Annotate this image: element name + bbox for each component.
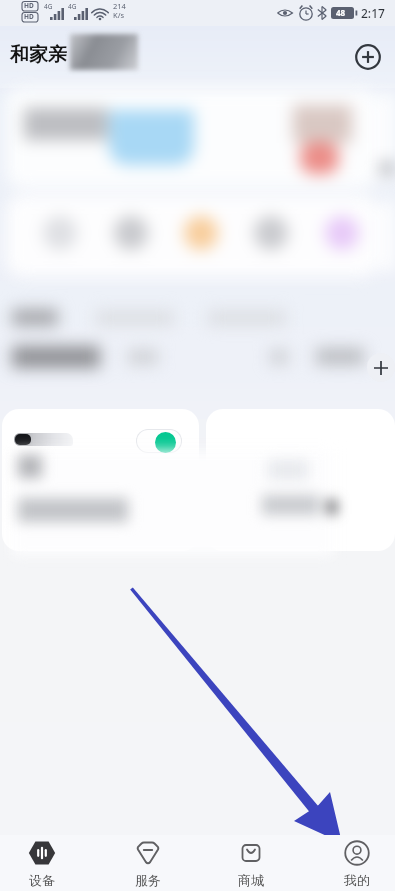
button[interactable]: [6, 88, 379, 188]
button[interactable]: [325, 216, 359, 250]
button[interactable]: [6, 195, 379, 277]
staticText: 服务: [135, 872, 161, 888]
button[interactable]: Add device: [350, 39, 386, 75]
button[interactable]: 我的: [317, 835, 395, 891]
staticText: 商城: [238, 872, 264, 888]
button[interactable]: [206, 409, 395, 551]
button[interactable]: [184, 216, 218, 250]
button[interactable]: [114, 216, 148, 250]
button[interactable]: [43, 216, 77, 250]
staticText: 2:17: [361, 5, 385, 21]
staticText: 214 K/s: [113, 1, 126, 21]
button[interactable]: 服务: [108, 835, 188, 891]
staticText: 4G: [44, 2, 53, 11]
staticText: 设备: [29, 872, 55, 888]
staticText: 4G: [68, 2, 77, 11]
button[interactable]: Toggle: [136, 429, 182, 453]
button[interactable]: [2, 409, 199, 551]
button[interactable]: Add: [367, 353, 395, 382]
staticText: 我的: [344, 872, 370, 888]
button[interactable]: 设备: [2, 835, 82, 891]
staticText: 48: [336, 7, 346, 18]
staticText: 和家亲: [10, 43, 67, 67]
button[interactable]: 商城: [211, 835, 291, 891]
staticText: HD: [24, 12, 34, 21]
staticText: HD: [24, 1, 34, 10]
button[interactable]: [254, 216, 288, 250]
